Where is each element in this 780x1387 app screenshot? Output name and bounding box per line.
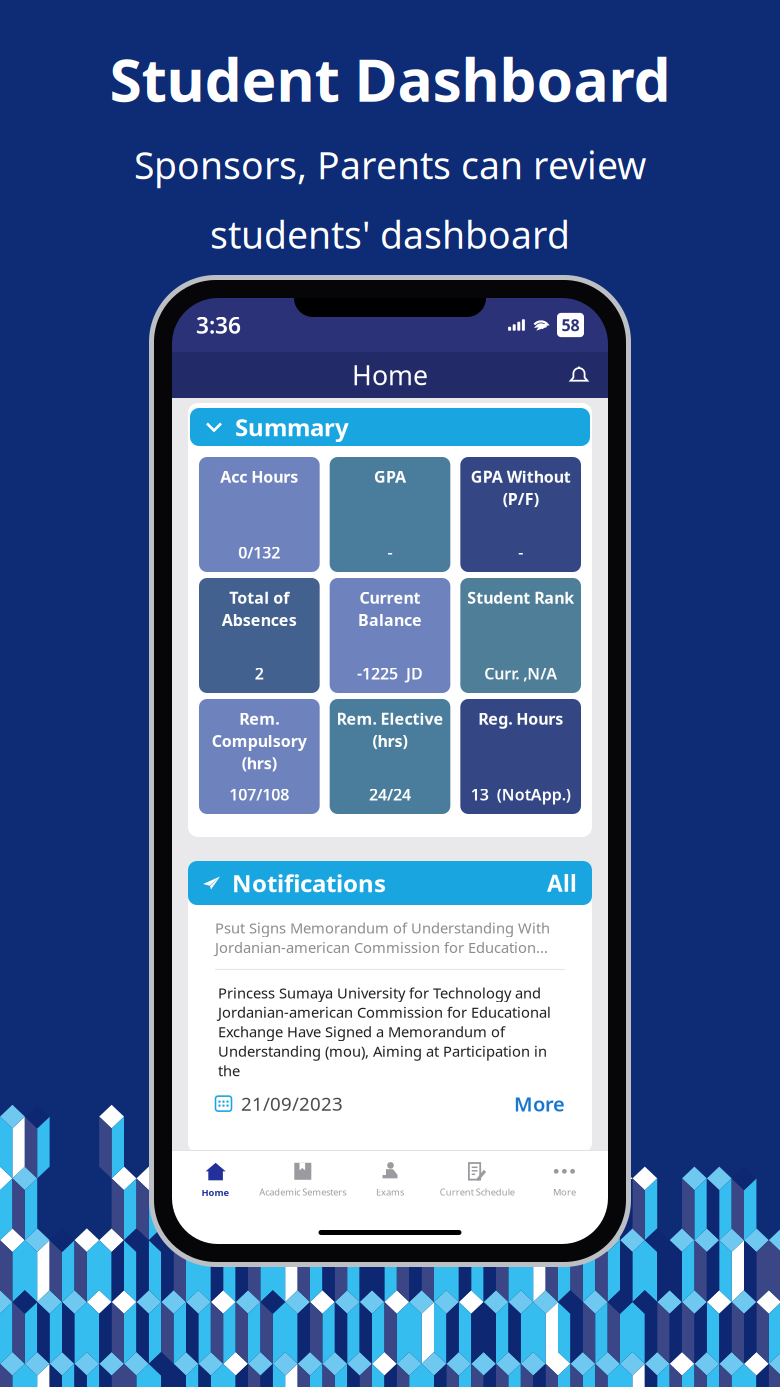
staticText: More	[553, 1186, 576, 1198]
button[interactable]: Total of	[199, 578, 320, 693]
button[interactable]: Exams	[346, 1151, 434, 1209]
staticText: Curr. ,N/A	[484, 663, 557, 684]
staticText: Home	[352, 357, 428, 393]
staticText: Sponsors, Parents can review	[134, 140, 646, 189]
button[interactable]: Reg. Hours	[460, 699, 581, 814]
staticText: Balance	[358, 609, 422, 630]
staticText: 2	[255, 663, 264, 684]
button[interactable]: Notifications	[562, 358, 596, 391]
staticText: 13 (NotApp.)	[471, 784, 571, 805]
staticText: GPA	[374, 466, 406, 487]
staticText: Exams	[376, 1186, 404, 1198]
staticText: 21/09/2023	[241, 1091, 343, 1116]
staticText: Summary	[235, 411, 349, 443]
staticText: Reg. Hours	[478, 708, 563, 729]
staticText: Princess Sumaya University for Technolog…	[218, 983, 551, 1080]
staticText: Absences	[222, 609, 297, 630]
button[interactable]: Student Rank	[460, 578, 581, 693]
staticText: -	[387, 542, 392, 563]
staticText: Psut Signs Memorandum of Understanding W…	[215, 918, 550, 957]
staticText: (hrs)	[242, 752, 277, 774]
staticText: (P/F)	[503, 488, 539, 509]
staticText: Academic Semesters	[259, 1186, 346, 1198]
staticText: 58	[561, 314, 579, 336]
button[interactable]: GPA Without	[460, 457, 581, 572]
staticText: 107/108	[229, 784, 289, 805]
button[interactable]: More	[521, 1151, 608, 1209]
button[interactable]: Acc Hours	[199, 457, 320, 572]
staticText: More	[514, 1090, 565, 1117]
staticText: Current	[359, 587, 420, 608]
staticText: All	[547, 868, 577, 898]
button[interactable]: GPA	[330, 457, 450, 572]
staticText: Acc Hours	[220, 466, 298, 487]
staticText: Compulsory	[212, 730, 307, 751]
staticText: 24/24	[369, 784, 411, 805]
button[interactable]: Current Schedule	[434, 1151, 521, 1209]
button[interactable]: Notifications	[188, 861, 592, 905]
staticText: (hrs)	[372, 730, 407, 751]
staticText: -1225 JD	[357, 663, 423, 684]
button[interactable]: Home	[172, 1151, 259, 1209]
staticText: Rem. Elective	[336, 708, 443, 729]
button[interactable]: Rem. Elective	[330, 699, 450, 814]
staticText: Current Schedule	[440, 1186, 515, 1198]
staticText: GPA Without	[471, 466, 571, 487]
staticText: 0/132	[238, 542, 280, 563]
staticText: 3:36	[196, 310, 241, 340]
staticText: Student Rank	[467, 587, 574, 608]
button[interactable]: Academic Semesters	[259, 1151, 346, 1209]
staticText: Notifications	[232, 867, 386, 899]
staticText: Student Dashboard	[109, 40, 670, 118]
button[interactable]: More	[514, 1090, 565, 1117]
staticText: Total of	[229, 587, 289, 608]
staticText: Home	[202, 1186, 230, 1199]
button[interactable]: Current	[330, 578, 450, 693]
button[interactable]: Summary	[190, 408, 590, 446]
button[interactable]: Rem.	[199, 699, 320, 814]
staticText: students' dashboard	[210, 209, 570, 259]
staticText: Rem.	[239, 708, 279, 729]
staticText: -	[518, 542, 523, 563]
